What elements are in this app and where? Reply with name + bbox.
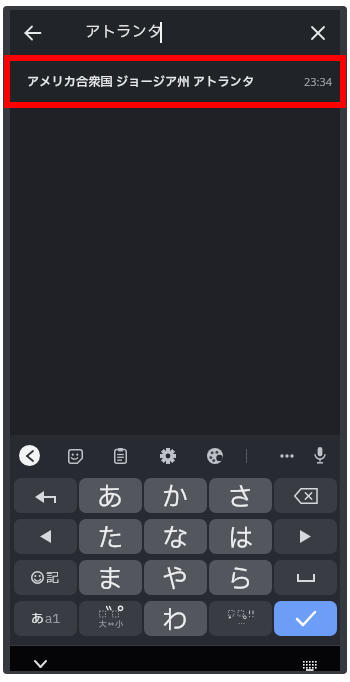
button[interactable] xyxy=(274,478,337,513)
staticText: か xyxy=(162,478,189,513)
button[interactable] xyxy=(14,478,77,513)
staticText: 大⇔小 xyxy=(99,619,123,631)
staticText: a1 xyxy=(45,609,61,628)
button[interactable] xyxy=(298,658,322,672)
staticText: 記 xyxy=(46,568,60,587)
button[interactable]: あ xyxy=(14,601,77,636)
button[interactable] xyxy=(19,445,40,466)
button[interactable]: さ xyxy=(209,478,272,513)
button[interactable]: あ xyxy=(79,478,142,513)
staticText: わ xyxy=(162,601,189,636)
staticText: アメリカ合衆国 ジョージア州 アトランタ xyxy=(27,73,255,91)
button[interactable]: た xyxy=(79,519,142,554)
button[interactable]: は xyxy=(209,519,272,554)
button[interactable]: わ xyxy=(144,601,207,636)
button[interactable] xyxy=(300,15,336,51)
staticText: や xyxy=(162,560,189,595)
button[interactable] xyxy=(274,560,337,595)
button[interactable]: 大⇔小 xyxy=(79,601,142,636)
button[interactable] xyxy=(308,443,332,467)
button[interactable]: ら xyxy=(209,560,272,595)
button[interactable] xyxy=(108,444,132,468)
button[interactable] xyxy=(28,657,52,671)
button[interactable]: アメリカ合衆国 ジョージア州 アトランタ xyxy=(10,55,340,108)
staticText: アトランタ xyxy=(85,21,163,44)
staticText: ま xyxy=(97,560,124,595)
button[interactable]: 記 xyxy=(14,560,77,595)
staticText: … xyxy=(238,619,245,629)
staticText: 23:34 xyxy=(304,74,333,89)
button[interactable]: … xyxy=(209,601,272,636)
staticText: た xyxy=(97,519,124,554)
staticText: な xyxy=(162,519,189,554)
button[interactable]: な xyxy=(144,519,207,554)
button[interactable] xyxy=(15,15,51,51)
button[interactable] xyxy=(63,444,87,468)
staticText: あ xyxy=(97,478,124,513)
button[interactable] xyxy=(275,444,299,468)
button[interactable]: か xyxy=(144,478,207,513)
button[interactable] xyxy=(156,444,180,468)
staticText: あ xyxy=(31,609,45,628)
staticText: ら xyxy=(227,560,254,595)
button[interactable]: や xyxy=(144,560,207,595)
button[interactable] xyxy=(203,444,227,468)
staticText: は xyxy=(227,519,254,554)
button[interactable] xyxy=(14,519,77,554)
button[interactable] xyxy=(274,601,337,636)
staticText: さ xyxy=(227,478,254,513)
button[interactable]: ま xyxy=(79,560,142,595)
button[interactable] xyxy=(274,519,337,554)
